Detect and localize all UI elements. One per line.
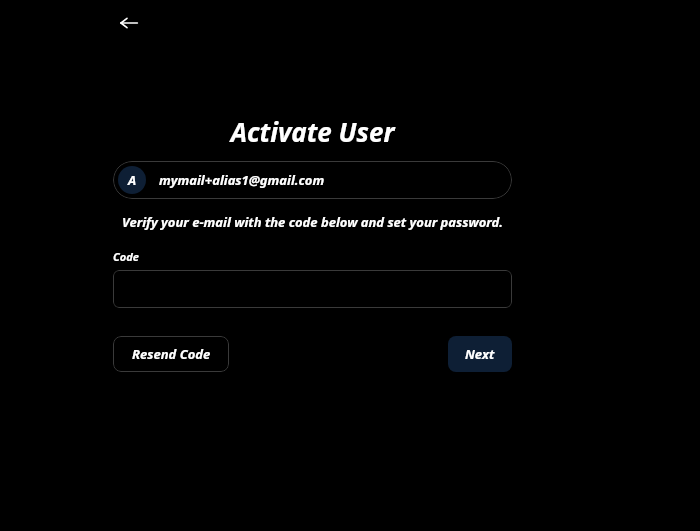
button[interactable]: Back [113,7,145,39]
staticText: Verify your e-mail with the code below a… [113,213,512,231]
staticText: A [128,171,137,189]
button[interactable]: Resend Code [113,336,229,372]
staticText: Resend Code [132,345,211,363]
button[interactable]: Next [448,336,512,372]
staticText: mymail+alias1@gmail.com [159,171,325,189]
staticText: Code [113,249,139,264]
staticText: Next [465,345,495,363]
button[interactable] [113,270,512,308]
staticText: Activate User [113,114,512,149]
button[interactable]: A [113,161,512,199]
